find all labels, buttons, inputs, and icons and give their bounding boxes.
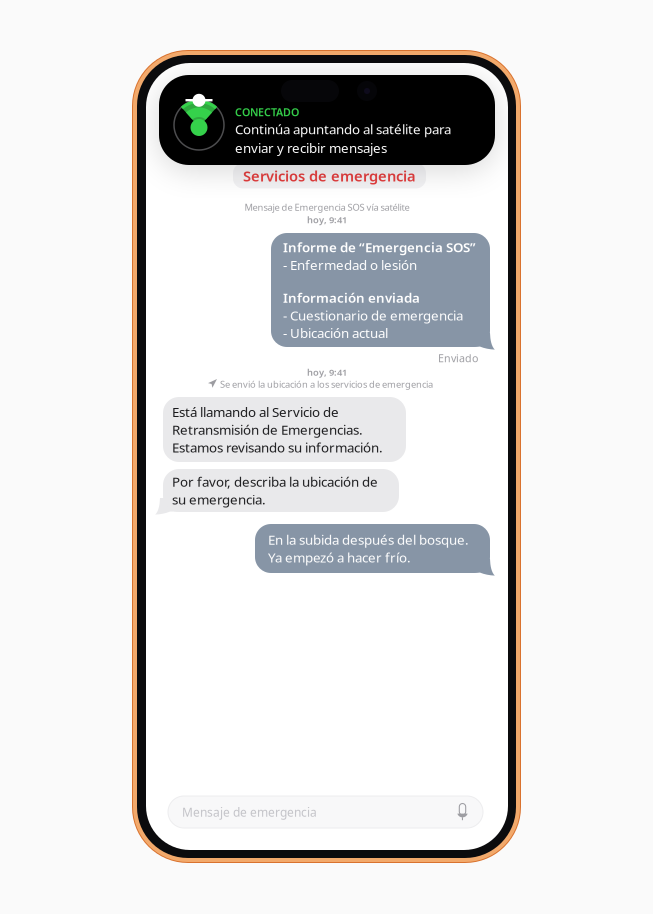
staticText: hoy, 9:41 (307, 366, 347, 378)
staticText: Enviado (438, 351, 478, 365)
staticText: Se envió la ubicación a los servicios de… (220, 378, 433, 390)
staticText: hoy, 9:41 (307, 213, 347, 226)
staticText: Mensaje de emergencia (182, 804, 317, 820)
staticText: su emergencia. (172, 490, 266, 508)
staticText: Informe de “Emergencia SOS” (283, 238, 476, 256)
staticText: Ya empezó a hacer frío. (268, 548, 411, 566)
staticText: enviar y recibir mensajes (235, 139, 387, 157)
staticText: Retransmisión de Emergencias. (172, 421, 363, 438)
staticText: - Ubicación actual (283, 324, 388, 342)
staticText: Estamos revisando su información. (172, 438, 383, 456)
staticText: - Enfermedad o lesión (283, 256, 417, 274)
staticText: Continúa apuntando al satélite para (235, 120, 451, 138)
staticText: Información enviada (283, 289, 420, 306)
staticText: En la subida después del bosque. (268, 531, 469, 548)
button[interactable]: Servicios de emergencia (233, 163, 426, 188)
staticText: Por favor, describa la ubicación de (172, 473, 378, 490)
staticText: Servicios de emergencia (243, 166, 416, 185)
staticText: Está llamando al Servicio de (172, 403, 339, 421)
staticText: CONECTADO (235, 105, 299, 119)
staticText: - Cuestionario de emergencia (283, 306, 463, 324)
button[interactable]: Mensaje de emergencia (168, 796, 483, 828)
staticText: Mensaje de Emergencia SOS vía satélite (244, 201, 409, 213)
